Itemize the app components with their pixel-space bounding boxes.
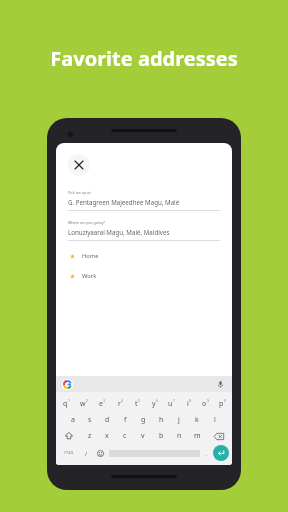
button[interactable]: q [57,396,75,412]
button[interactable]: w [75,396,93,412]
button[interactable]: y [146,396,163,412]
staticText: 5 [138,398,140,403]
staticText: Work [82,272,97,280]
staticText: ?123 [64,450,74,456]
staticText: t [135,399,138,409]
staticText: 0 [224,398,226,403]
button[interactable]: k [188,412,206,428]
button[interactable]: c [116,428,134,444]
button[interactable]: x [98,428,116,444]
button[interactable]: Voice input [215,379,225,389]
button[interactable]: Backspace [206,428,231,444]
button[interactable]: Home [56,252,232,260]
staticText: z [88,431,92,441]
staticText: k [195,415,199,425]
button[interactable]: v [134,428,152,444]
staticText: 4 [121,398,123,403]
staticText: 1 [68,398,70,403]
staticText: G. Pentagreen Majeedhee Magu, Malé [68,198,180,206]
staticText: u [168,399,173,409]
button[interactable]: Pick me up at [56,190,232,211]
button[interactable]: i [180,396,197,412]
button[interactable]: m [188,428,206,444]
staticText: e [99,399,103,409]
button[interactable]: l [206,412,224,428]
button[interactable]: Emoji [93,444,107,462]
staticText: / [85,450,88,457]
staticText: h [159,415,164,425]
button[interactable]: . [200,444,213,462]
button[interactable]: / [79,444,93,462]
staticText: w [80,399,86,409]
button[interactable]: s [81,412,98,428]
button[interactable]: Work [56,272,232,280]
button[interactable]: Close [68,154,90,176]
staticText: p [219,399,224,409]
button[interactable]: o [197,396,214,412]
staticText: 2 [86,398,88,403]
button[interactable]: ?123 [59,444,79,462]
button[interactable]: a [64,412,81,428]
staticText: v [141,431,145,441]
staticText: s [88,415,92,425]
button[interactable]: t [129,396,146,412]
button[interactable]: n [170,428,188,444]
staticText: n [177,431,182,441]
button[interactable]: Shift [57,428,81,444]
staticText: q [63,399,68,409]
staticText: 9 [207,398,209,403]
staticText: c [123,431,127,441]
staticText: x [105,431,109,441]
button[interactable]: Enter [213,445,229,461]
button[interactable]: g [134,412,152,428]
staticText: d [105,415,110,425]
staticText: f [124,415,127,425]
staticText: b [159,431,164,441]
staticText: i [187,399,189,409]
staticText: l [214,415,216,425]
button[interactable]: r [111,396,129,412]
button[interactable]: j [170,412,188,428]
staticText: a [71,415,75,425]
staticText: 7 [173,398,175,403]
staticText: r [118,399,121,409]
button[interactable]: z [81,428,98,444]
staticText: Favorite addresses [0,45,288,72]
staticText: o [202,399,207,409]
button[interactable]: e [93,396,111,412]
staticText: 8 [189,398,191,403]
button[interactable]: b [152,428,170,444]
staticText: Pick me up at [68,190,91,195]
button[interactable]: d [98,412,116,428]
button[interactable]: f [116,412,134,428]
staticText: Where are you going? [68,220,105,225]
staticText: Lonuziyaarai Magu, Malé, Maldives [68,228,170,236]
staticText: 6 [156,398,158,403]
staticText: g [141,415,146,425]
staticText: j [178,415,180,425]
button[interactable]: p [214,396,231,412]
button[interactable]: Google [62,379,73,390]
button[interactable]: h [152,412,170,428]
button[interactable]: Where are you going? [56,220,232,241]
button[interactable]: u [163,396,180,412]
staticText: y [152,399,156,409]
staticText: Home [82,252,99,260]
staticText: 3 [103,398,105,403]
staticText: . [206,450,208,457]
staticText: m [194,431,201,441]
